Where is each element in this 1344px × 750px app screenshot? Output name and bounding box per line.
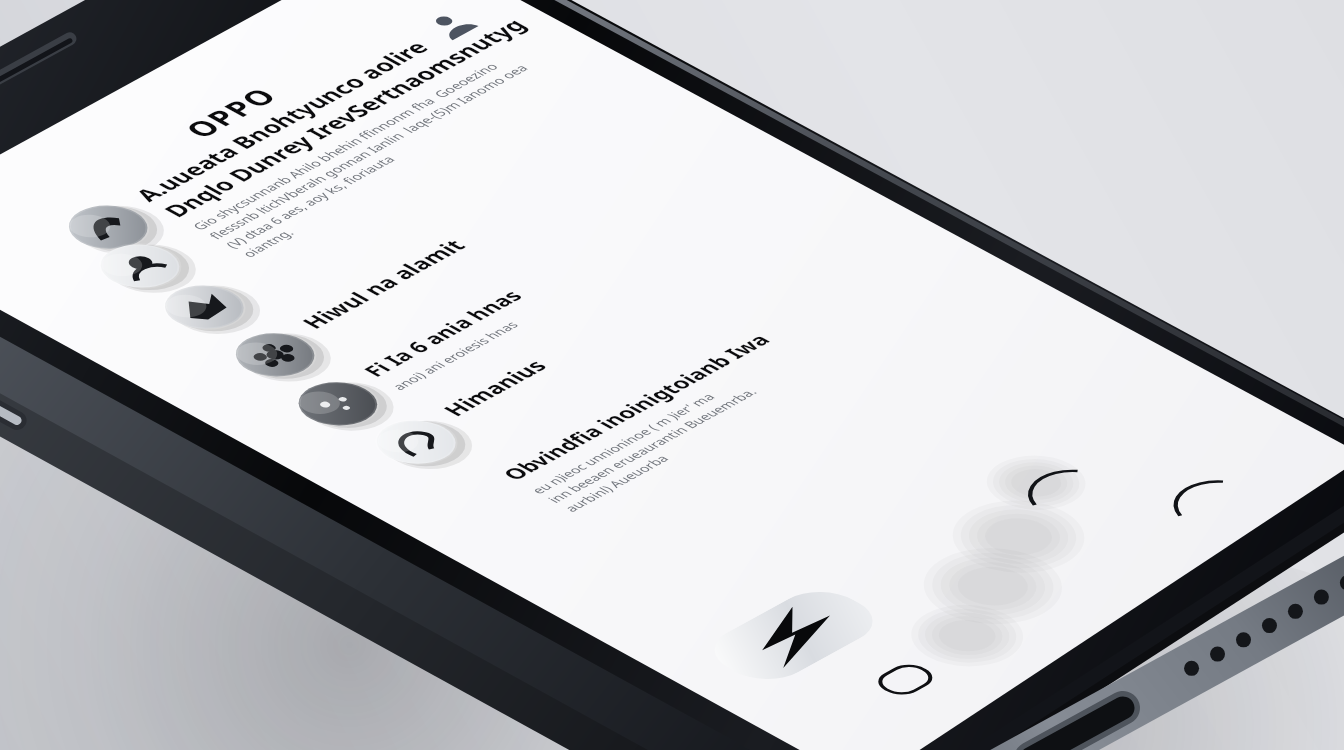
staticText: anoi) ani eroiesis hnas [387, 314, 523, 397]
staticText: Obvindfia inoinigtoianb Iwa [495, 321, 778, 493]
button[interactable]: OPPO [162, 72, 298, 152]
button[interactable]: Hiwul na alamit [208, 70, 765, 408]
button[interactable]: Quick charge [694, 577, 893, 693]
staticText: Himanius [434, 351, 555, 423]
button[interactable]: Home [852, 649, 959, 711]
staticText: OPPO [173, 79, 287, 146]
button[interactable] [73, 0, 630, 319]
button[interactable]: Account [393, 0, 510, 59]
button[interactable]: Obvindfia inoinigtoianb Iwa [487, 225, 998, 533]
staticText: A.uueata Bnohtyunco aolire Dnqlo Dunrey … [125, 0, 534, 233]
staticText: eu n)ieoc unnioninoe ( m )ier' ma inn be… [525, 369, 779, 521]
button[interactable]: A.uueata Bnohtyunco aolire Dnqlo Dunrey … [39, 0, 673, 321]
button[interactable]: Fi Ia 6 ania hnas [270, 119, 828, 457]
staticText: Hiwul na alamit [293, 229, 473, 338]
button[interactable]: Himanius [349, 157, 906, 495]
staticText: Fi Ia 6 ania hnas [356, 281, 530, 386]
staticText: Gio shycsunnanb Ahilo bhehin ffinnonm fh… [187, 42, 567, 271]
button[interactable] [137, 22, 694, 360]
